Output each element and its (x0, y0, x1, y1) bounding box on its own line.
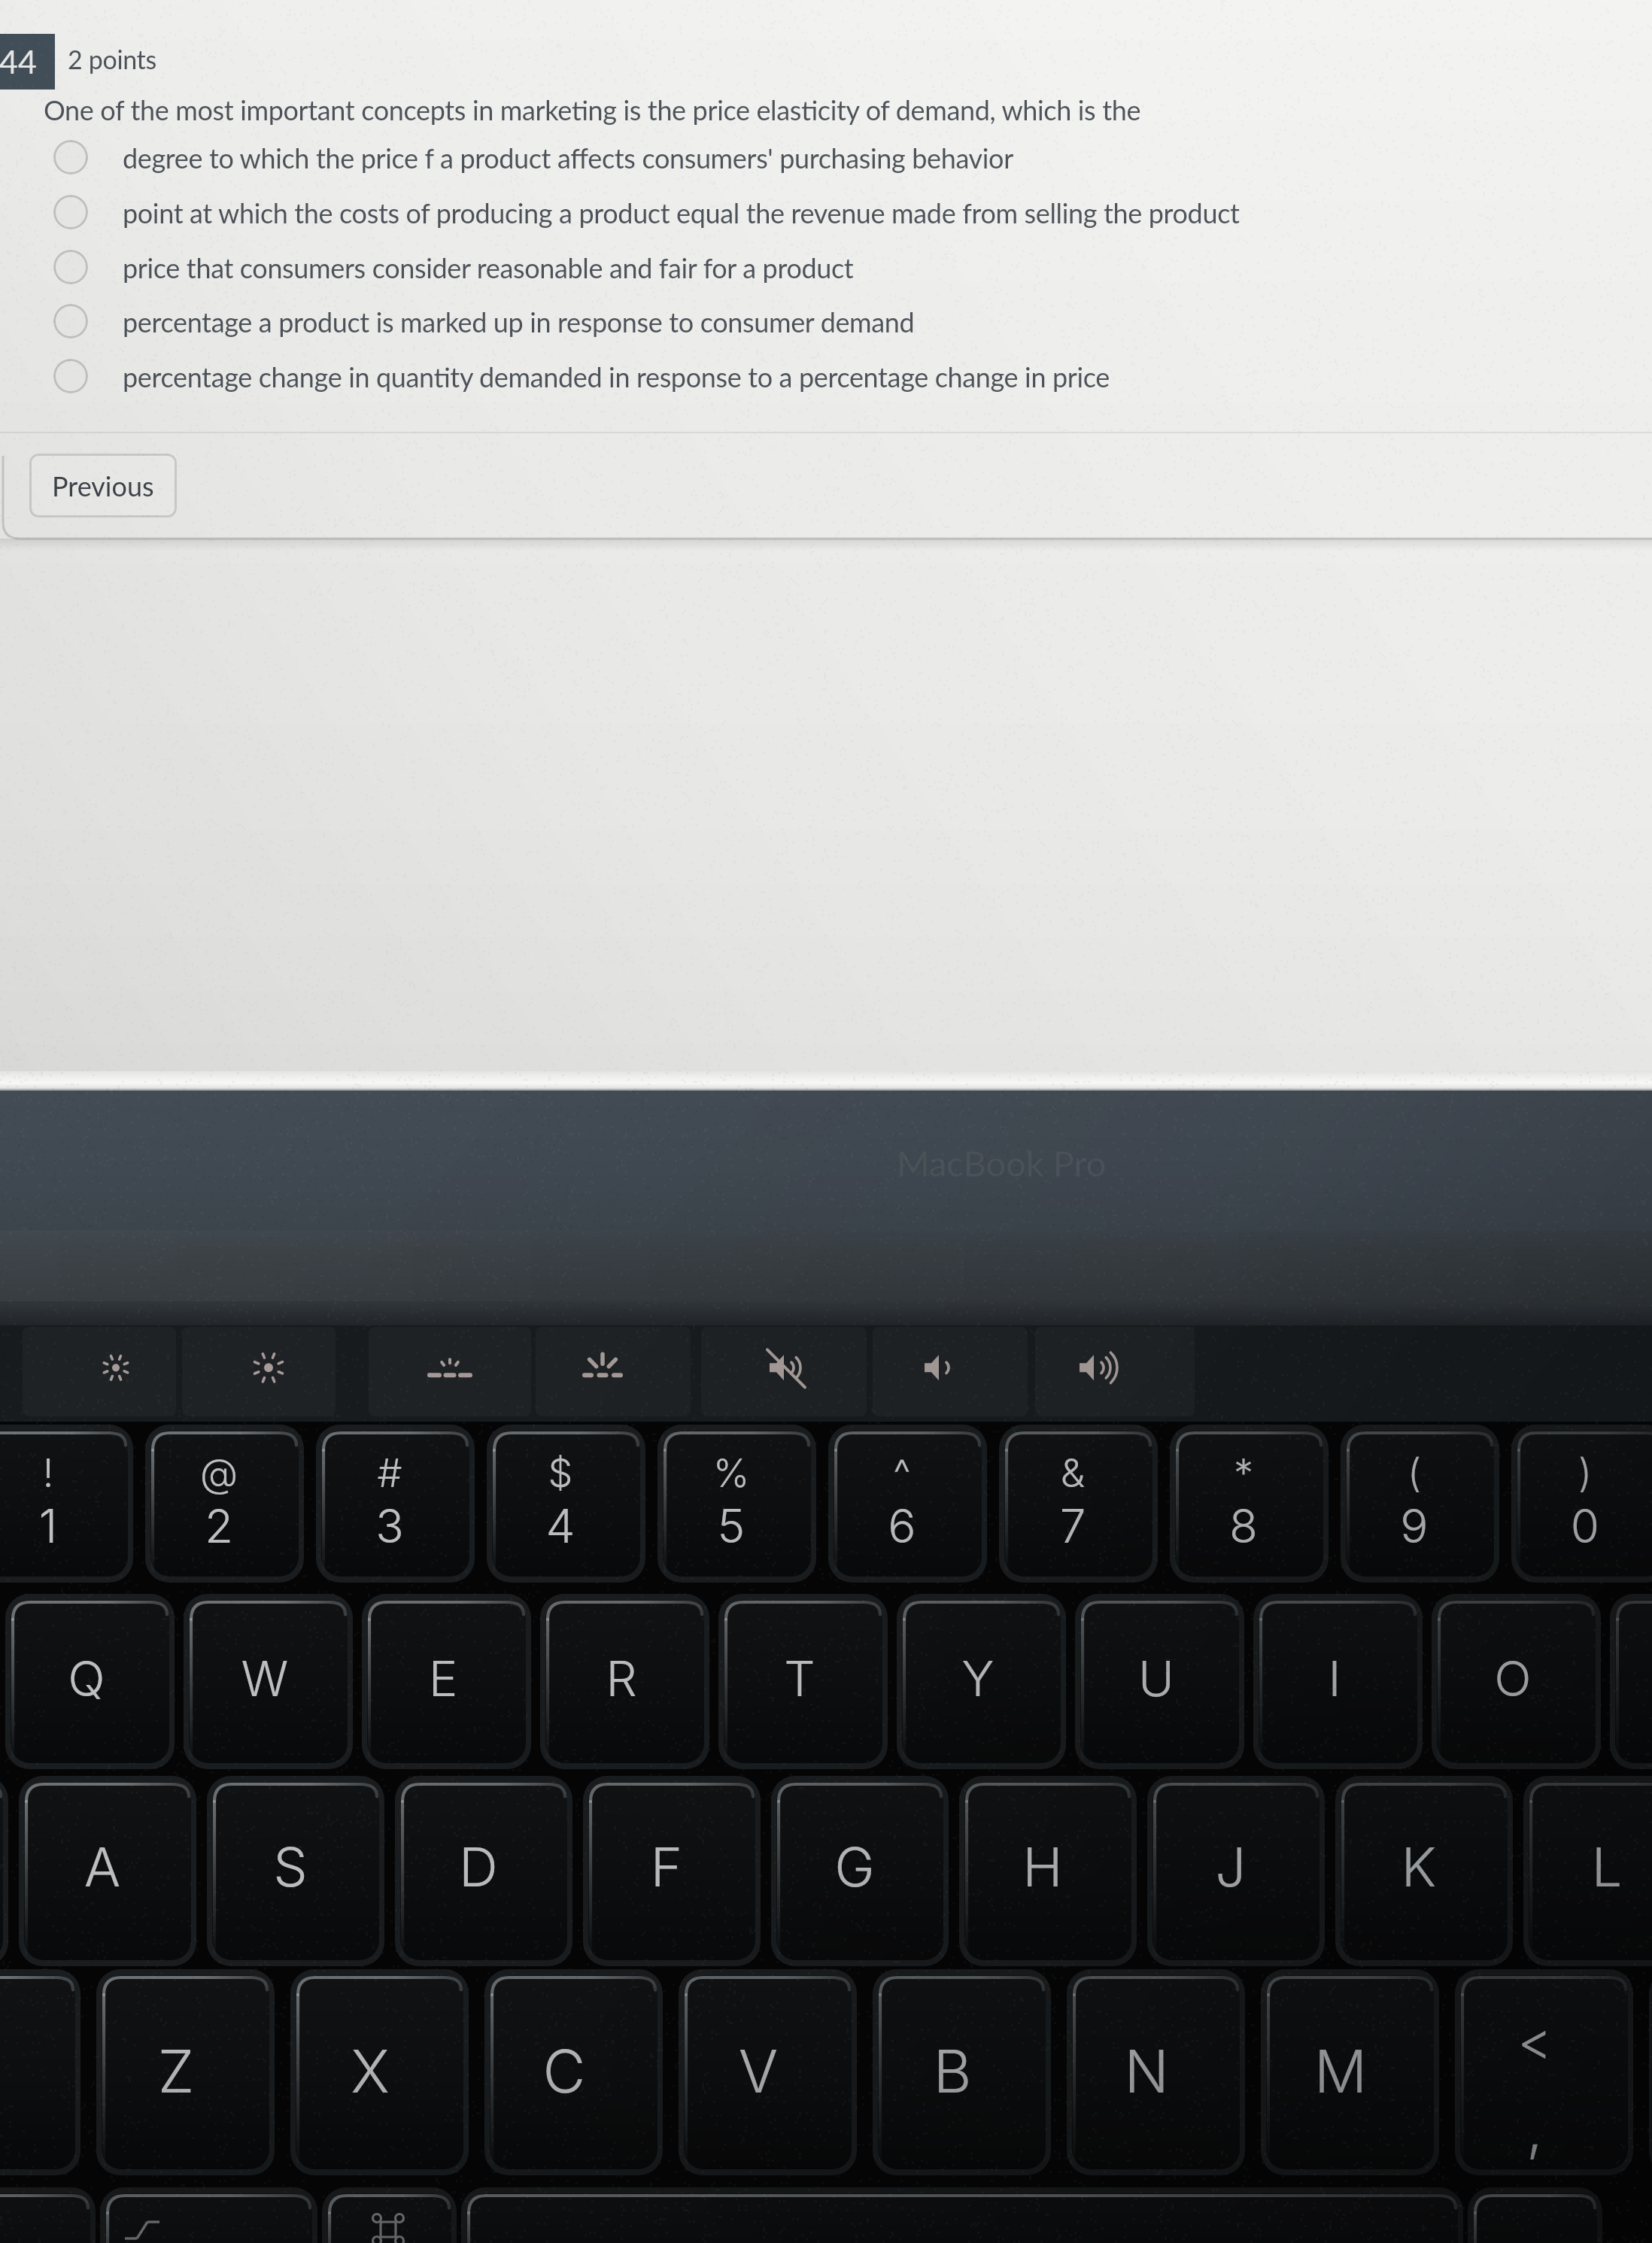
staticText: ( (1347, 1449, 1482, 1497)
staticText: Q (19, 1649, 154, 1708)
staticText: M (1273, 2035, 1408, 2106)
staticText: G (787, 1834, 922, 1899)
staticText: U (1089, 1649, 1224, 1708)
staticText: L (1539, 1834, 1652, 1899)
staticText: 3 (322, 1498, 457, 1554)
staticText: 0 (1517, 1498, 1652, 1554)
staticText: point at which the costs of producing a … (123, 196, 1240, 229)
staticText: N (1079, 2035, 1214, 2106)
staticText: J (1163, 1834, 1298, 1899)
button[interactable]: percentage change in quantity demanded i… (53, 349, 1652, 403)
button[interactable]: Previous (29, 454, 177, 517)
staticText: A (35, 1834, 170, 1899)
staticText: 2 (151, 1498, 287, 1554)
staticText: V (691, 2035, 826, 2106)
button[interactable]: point at which the costs of producing a … (53, 185, 1652, 239)
button[interactable]: degree to which the price f a product af… (53, 130, 1652, 184)
staticText: 4 (493, 1498, 628, 1554)
button[interactable]: 44 (0, 34, 55, 90)
staticText: price that consumers consider reasonable… (123, 251, 854, 284)
staticText: ^ (834, 1449, 970, 1497)
staticText: 2 points (68, 44, 156, 74)
staticText: 9 (1347, 1498, 1482, 1554)
staticText: S (223, 1834, 358, 1899)
staticText: < (1467, 2008, 1602, 2072)
staticText: F (599, 1834, 734, 1899)
staticText: # (322, 1449, 457, 1497)
staticText: One of the most important concepts in ma… (44, 93, 1141, 126)
staticText: 6 (834, 1498, 970, 1554)
button[interactable]: price that consumers consider reasonable… (53, 240, 1652, 294)
staticText: ! (0, 1449, 116, 1497)
button[interactable]: percentage a product is marked up in res… (53, 294, 1652, 348)
staticText: 8 (1176, 1498, 1311, 1554)
staticText: O (1445, 1649, 1581, 1708)
staticText: MacBook Pro (897, 1142, 1107, 1184)
staticText: 44 (0, 42, 37, 81)
staticText: percentage change in quantity demanded i… (123, 360, 1110, 393)
staticText: 7 (1005, 1498, 1140, 1554)
staticText: * (1176, 1449, 1311, 1497)
staticText: Z (108, 2035, 244, 2106)
staticText: & (1005, 1449, 1140, 1497)
staticText: ) (1517, 1449, 1652, 1497)
staticText: X (302, 2035, 438, 2106)
staticText: C (497, 2035, 632, 2106)
staticText: T (732, 1649, 867, 1708)
staticText: degree to which the price f a product af… (123, 141, 1013, 174)
staticText: Previous (52, 469, 154, 502)
staticText: R (554, 1649, 689, 1708)
staticText: I (1267, 1649, 1402, 1708)
staticText: D (411, 1834, 546, 1899)
staticText: K (1351, 1834, 1486, 1899)
staticText: B (885, 2035, 1020, 2106)
staticText: W (197, 1649, 333, 1708)
staticText: E (375, 1649, 511, 1708)
staticText: @ (151, 1449, 287, 1497)
staticText: percentage a product is marked up in res… (123, 305, 915, 338)
staticText: H (975, 1834, 1110, 1899)
staticText: % (664, 1449, 799, 1497)
staticText: 5 (664, 1498, 799, 1554)
staticText: , (1467, 2093, 1602, 2163)
staticText: $ (493, 1449, 628, 1497)
staticText: 1 (0, 1498, 116, 1554)
staticText: Y (910, 1649, 1046, 1708)
button[interactable]: Touch Bar function keys (0, 1325, 1652, 1424)
